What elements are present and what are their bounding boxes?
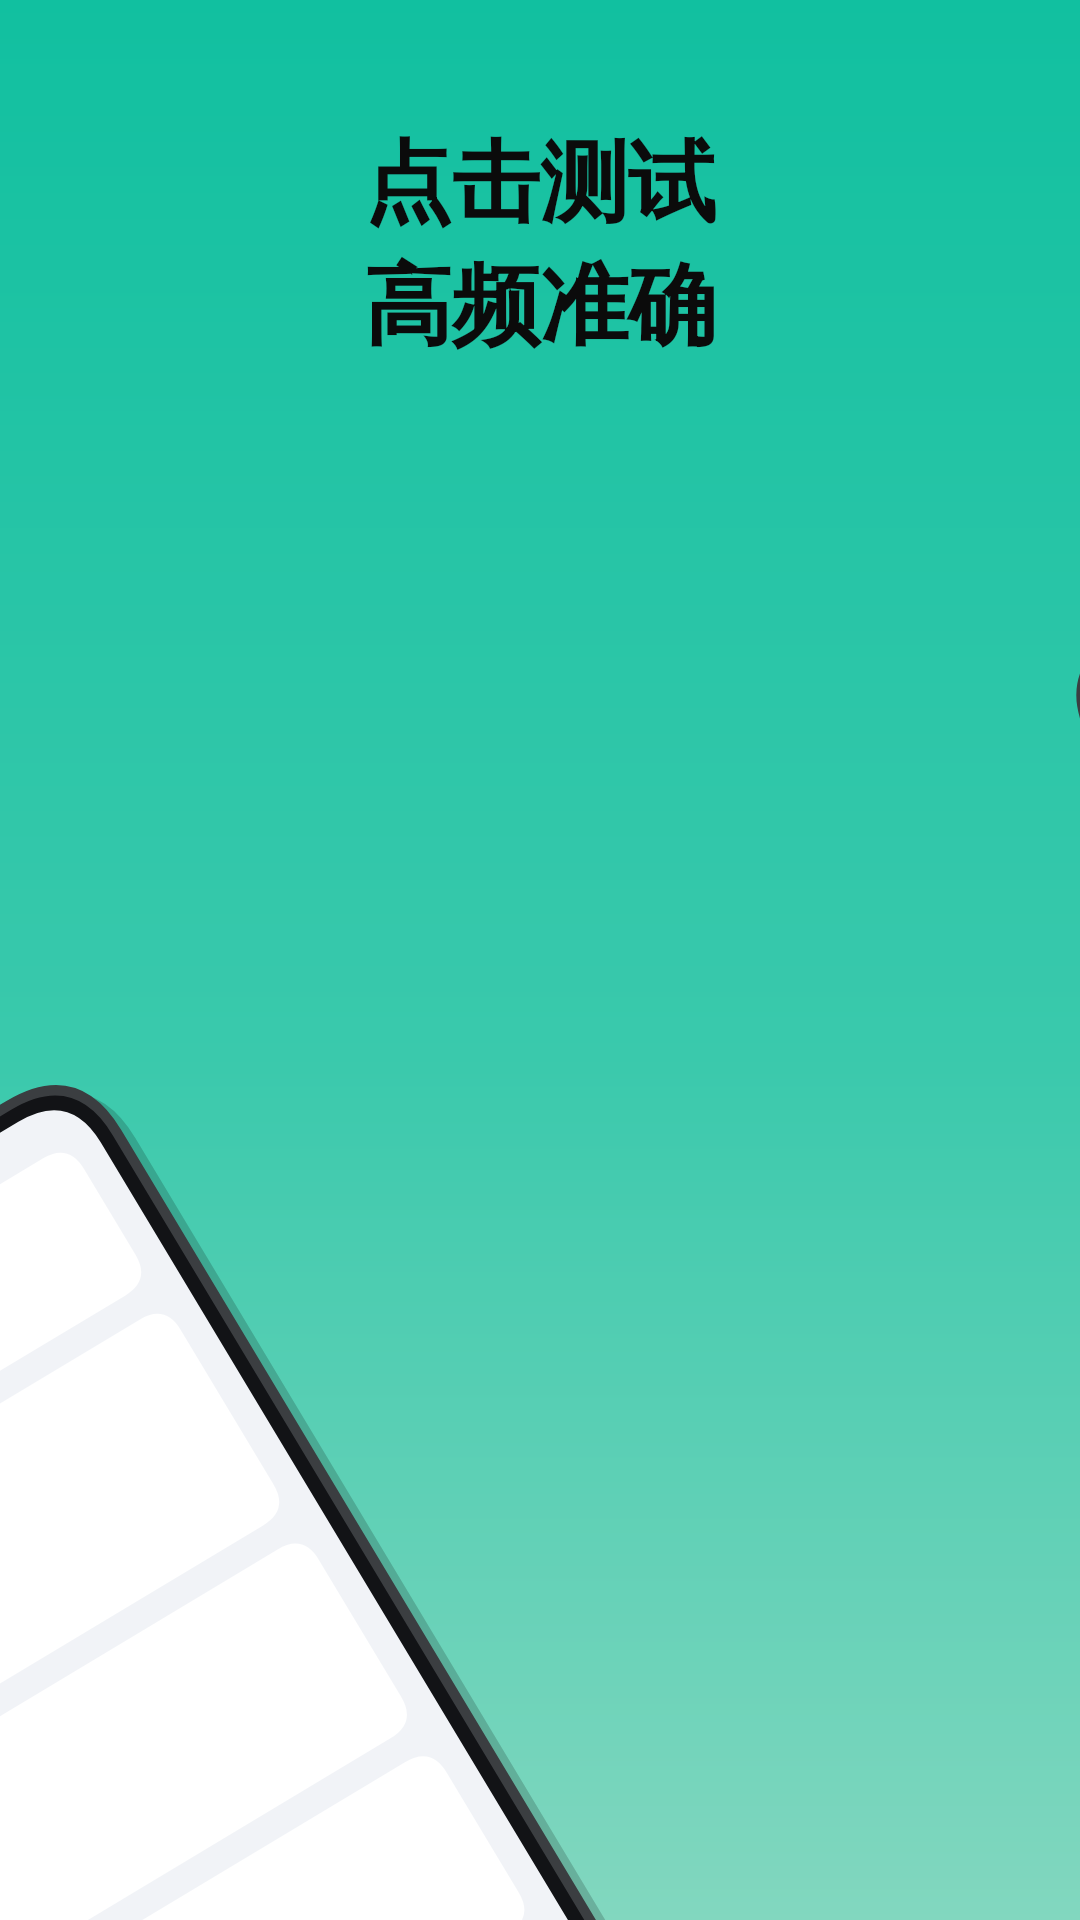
staticText: 高频准确 [364,251,716,362]
button[interactable]: 功能 [90,1470,240,1590]
staticText: 点击测试 [364,128,716,239]
